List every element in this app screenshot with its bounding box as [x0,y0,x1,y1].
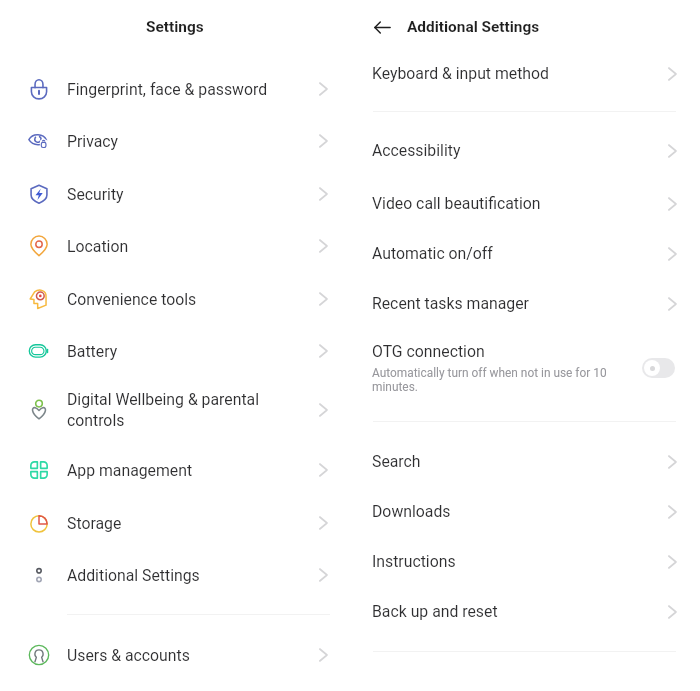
staticText: Fingerprint, face & password [67,80,268,99]
staticText: Convenience tools [67,290,197,309]
button[interactable]: Privacy [0,115,350,167]
staticText: Accessibility [372,141,461,160]
staticText: App management [67,461,193,480]
staticText: Instructions [372,552,456,571]
staticText: Settings [146,18,204,36]
staticText: Video call beautification [372,194,541,213]
staticText: Additional Settings [407,18,540,36]
staticText: Security [67,185,124,204]
staticText: OTG connection [372,342,485,361]
button[interactable]: Automatic on/off [350,228,700,279]
button[interactable]: Battery [0,325,350,377]
button[interactable]: OTG connection [350,328,700,408]
button[interactable]: Storage [0,497,350,549]
button[interactable]: Convenience tools [0,273,350,325]
button[interactable]: Users & accounts [0,629,350,681]
staticText: Back up and reset [372,602,498,621]
button[interactable]: Security [0,168,350,220]
staticText: Digital Wellbeing & parental [67,390,259,409]
button[interactable]: Back [368,13,396,41]
staticText: Privacy [67,132,119,151]
staticText: Downloads [372,502,451,521]
button[interactable]: Search [350,436,700,487]
button[interactable]: Additional Settings [0,549,350,601]
button[interactable]: Back up and reset [350,586,700,637]
staticText: Battery [67,342,118,361]
button[interactable]: Keyboard & input method [350,48,700,99]
staticText: Automatically turn off when not in use f… [372,366,612,394]
staticText: Search [372,452,421,471]
button[interactable]: Accessibility [350,125,700,176]
button[interactable]: Video call beautification [350,178,700,229]
staticText: Location [67,237,129,256]
staticText: controls [67,411,125,430]
button[interactable]: App management [0,444,350,496]
button[interactable]: OTG connection toggle [642,358,675,378]
staticText: Automatic on/off [372,244,493,263]
staticText: Storage [67,514,122,533]
button[interactable]: Downloads [350,486,700,537]
button[interactable]: Fingerprint, face & password [0,63,350,115]
staticText: Recent tasks manager [372,294,529,313]
staticText: Additional Settings [67,566,200,585]
button[interactable]: Digital Wellbeing & parental [0,376,350,444]
staticText: Keyboard & input method [372,64,549,83]
button[interactable]: Instructions [350,536,700,587]
button[interactable]: Location [0,220,350,272]
button[interactable]: Recent tasks manager [350,278,700,329]
staticText: Users & accounts [67,646,190,665]
